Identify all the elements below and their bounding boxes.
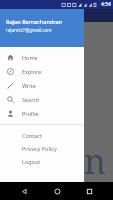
staticText: Rajan Ramachandran — [6, 18, 63, 25]
button[interactable]: Home — [48, 182, 66, 200]
staticText: Contact — [22, 132, 42, 139]
staticText: n — [84, 138, 106, 184]
staticText: Search — [22, 96, 40, 103]
staticText: Logout — [22, 158, 41, 165]
button[interactable]: Recent apps — [80, 182, 98, 200]
staticText: Privacy Policy — [22, 145, 57, 152]
button[interactable]: Profile — [0, 106, 84, 120]
button[interactable]: Explore — [0, 64, 84, 78]
staticText: Explore — [22, 68, 42, 75]
button[interactable]: Home — [0, 50, 84, 64]
staticText: 4:54 — [101, 1, 111, 8]
button[interactable]: Write — [0, 78, 84, 92]
button[interactable]: Privacy Policy — [0, 142, 84, 155]
button[interactable]: Back — [15, 182, 33, 200]
staticText: Home — [22, 54, 38, 61]
staticText: rajanrtx7@gmail.com — [6, 27, 52, 33]
staticText: Profile — [22, 110, 39, 117]
button[interactable]: Contact — [0, 129, 84, 142]
button[interactable]: Search — [0, 92, 84, 106]
staticText: Write — [22, 82, 36, 89]
button[interactable]: Logout — [0, 155, 84, 168]
button[interactable]: Rajan Ramachandran — [0, 9, 84, 47]
